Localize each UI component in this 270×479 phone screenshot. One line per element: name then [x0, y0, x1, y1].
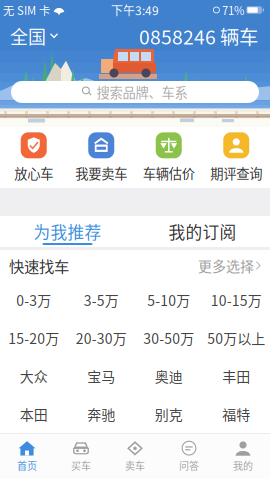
button[interactable]: 我的: [216, 433, 270, 479]
button[interactable]: 全国: [0, 23, 66, 49]
button[interactable]: 卖车: [108, 433, 162, 479]
button[interactable]: 首页: [0, 433, 54, 479]
button[interactable]: 丰田: [202, 357, 270, 395]
staticText: 50万以上: [207, 328, 265, 348]
staticText: 30-50万: [143, 328, 194, 348]
button[interactable]: 买车: [54, 433, 108, 479]
staticText: 下午3:49: [111, 1, 159, 19]
staticText: 问答: [179, 458, 199, 473]
staticText: 福特: [222, 404, 250, 424]
button[interactable]: 期评查询: [202, 127, 270, 188]
staticText: 20-30万: [76, 328, 127, 348]
staticText: 0-3万: [16, 290, 51, 310]
button[interactable]: 10-15万: [202, 281, 270, 319]
staticText: 我的订阅: [168, 219, 236, 243]
button[interactable]: 0-3万: [0, 281, 67, 319]
staticText: 买车: [71, 458, 91, 473]
button[interactable]: 5-10万: [135, 281, 202, 319]
button[interactable]: 3-5万: [67, 281, 135, 319]
staticText: 丰田: [222, 366, 250, 386]
button[interactable]: 奥迪: [135, 357, 202, 395]
staticText: 更多选择: [198, 255, 254, 276]
button[interactable]: 宝马: [67, 357, 135, 395]
staticText: 我的: [233, 458, 253, 473]
button[interactable]: 15-20万: [0, 319, 67, 357]
staticText: 本田: [20, 404, 48, 424]
staticText: 奔驰: [87, 404, 115, 424]
button[interactable]: 我的订阅: [135, 216, 270, 247]
staticText: 别克: [155, 404, 183, 424]
staticText: 快速找车: [9, 254, 69, 277]
staticText: 全国: [10, 23, 46, 49]
button[interactable]: 本田: [0, 395, 67, 433]
staticText: 为我推荐: [33, 219, 101, 243]
button[interactable]: 搜索品牌、车系: [11, 81, 259, 103]
staticText: 搜索品牌、车系: [96, 82, 187, 102]
staticText: 0858246 辆车: [139, 22, 258, 50]
staticText: 卖车: [125, 458, 145, 473]
button[interactable]: 别克: [135, 395, 202, 433]
button[interactable]: 50万以上: [202, 319, 270, 357]
button[interactable]: 车辆估价: [135, 127, 202, 188]
button[interactable]: 20-30万: [67, 319, 135, 357]
button[interactable]: 大众: [0, 357, 67, 395]
button[interactable]: 福特: [202, 395, 270, 433]
staticText: 无 SIM 卡: [3, 2, 50, 18]
staticText: 我要卖车: [75, 163, 127, 183]
button[interactable]: 问答: [162, 433, 216, 479]
staticText: 15-20万: [8, 328, 59, 348]
staticText: 车辆估价: [143, 163, 195, 183]
staticText: 5-10万: [147, 290, 190, 310]
button[interactable]: 放心车: [0, 127, 67, 188]
staticText: 大众: [20, 366, 48, 386]
button[interactable]: 更多选择: [198, 250, 261, 280]
staticText: 期评查询: [210, 163, 262, 183]
staticText: 71%: [222, 2, 244, 18]
staticText: 放心车: [14, 163, 53, 183]
staticText: 10-15万: [211, 290, 262, 310]
staticText: 首页: [17, 458, 37, 473]
button[interactable]: 我要卖车: [67, 127, 135, 188]
staticText: 3-5万: [84, 290, 119, 310]
button[interactable]: 奔驰: [67, 395, 135, 433]
staticText: 奥迪: [155, 366, 183, 386]
staticText: 宝马: [87, 366, 115, 386]
button[interactable]: 为我推荐: [0, 216, 135, 247]
button[interactable]: 30-50万: [135, 319, 202, 357]
